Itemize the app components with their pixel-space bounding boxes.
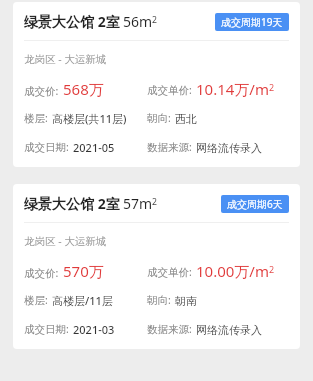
- staticText: 成交日期:: [24, 140, 69, 154]
- staticText: 网络流传录入: [196, 141, 262, 155]
- staticText: 高楼层/11层: [52, 293, 113, 308]
- staticText: 朝南: [175, 294, 197, 308]
- staticText: 成交价:: [24, 266, 59, 280]
- staticText: 绿景大公馆 2室: [24, 12, 120, 31]
- staticText: 高楼层(共11层): [52, 111, 127, 126]
- staticText: 成交单价:: [147, 265, 192, 279]
- staticText: 楼层:: [24, 111, 48, 125]
- staticText: 朝向:: [147, 293, 171, 307]
- staticText: 568万: [63, 79, 104, 99]
- button[interactable]: 绿景大公馆 2室: [13, 184, 300, 349]
- staticText: 10.00万/m2: [196, 261, 275, 281]
- staticText: 57m2: [123, 194, 158, 213]
- staticText: 龙岗区 - 大运新城: [24, 234, 107, 248]
- button[interactable]: 成交周期6天: [221, 195, 289, 213]
- staticText: 56m2: [123, 12, 158, 31]
- staticText: 2021-03: [73, 322, 115, 337]
- staticText: 成交周期6天: [227, 197, 283, 211]
- staticText: 2021-05: [73, 140, 115, 155]
- button[interactable]: 成交周期19天: [215, 13, 289, 31]
- staticText: 570万: [63, 261, 104, 281]
- staticText: 数据来源:: [147, 140, 192, 154]
- staticText: 成交周期19天: [221, 15, 283, 29]
- staticText: 西北: [175, 112, 197, 126]
- button[interactable]: 绿景大公馆 2室: [13, 2, 300, 167]
- staticText: 10.14万/m2: [196, 79, 275, 99]
- staticText: 数据来源:: [147, 322, 192, 336]
- staticText: 网络流传录入: [196, 323, 262, 337]
- staticText: 龙岗区 - 大运新城: [24, 52, 107, 66]
- staticText: 朝向:: [147, 111, 171, 125]
- staticText: 楼层:: [24, 293, 48, 307]
- staticText: 成交日期:: [24, 322, 69, 336]
- staticText: 绿景大公馆 2室: [24, 194, 120, 213]
- staticText: 成交单价:: [147, 83, 192, 97]
- staticText: 成交价:: [24, 84, 59, 98]
